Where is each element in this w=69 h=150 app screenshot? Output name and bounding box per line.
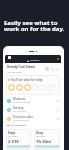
staticText: Running bbox=[13, 106, 24, 110]
staticText: You'll see tasks for today bbox=[11, 78, 43, 82]
button[interactable]: Previous bbox=[51, 68, 54, 71]
button[interactable]: You'll see tasks for today bbox=[6, 75, 60, 95]
other: Menu bbox=[8, 56, 11, 59]
button[interactable]: Track your sales bbox=[5, 114, 61, 123]
staticText: Steps bbox=[8, 131, 16, 135]
button[interactable]: Steps bbox=[6, 129, 31, 150]
staticText: last night bbox=[36, 135, 46, 138]
staticText: Track your sales bbox=[13, 115, 33, 119]
button[interactable]: Day 3 bbox=[24, 84, 31, 91]
button[interactable]: Day 2 bbox=[16, 84, 23, 91]
button[interactable]: Day 5 bbox=[39, 84, 46, 91]
button[interactable]: Workouts bbox=[5, 96, 61, 105]
staticText: this week bbox=[8, 135, 18, 138]
button[interactable]: MY PROGRESS bbox=[7, 124, 26, 127]
button[interactable]: Day 4 bbox=[31, 84, 38, 91]
button[interactable]: Next bbox=[56, 68, 59, 71]
staticText: Easily see what to work on for the day. bbox=[4, 19, 65, 33]
button[interactable]: Sleep bbox=[34, 129, 60, 150]
button[interactable]: Running bbox=[5, 105, 61, 114]
staticText: Howdy! Carl Dawn bbox=[7, 65, 36, 69]
staticText: Sleep bbox=[36, 131, 44, 135]
staticText: 2.4 km today bbox=[13, 110, 27, 113]
button[interactable]: Calendar bbox=[45, 67, 49, 71]
staticText: 3 of 5 completed bbox=[13, 101, 31, 104]
staticText: 7h 20m bbox=[36, 139, 52, 145]
staticText: 2 010 bbox=[8, 139, 19, 145]
staticText: MY PROGRESS bbox=[10, 124, 26, 127]
staticText: Progress report bbox=[13, 119, 30, 122]
staticText: 06 May 2020 bbox=[7, 70, 22, 73]
button[interactable]: Day 6 bbox=[47, 84, 54, 91]
staticText: Workouts bbox=[13, 97, 25, 101]
button[interactable]: Day 1 bbox=[8, 84, 15, 91]
staticText: NIMBUS bbox=[30, 59, 40, 62]
button[interactable]: Menu bbox=[5, 55, 61, 63]
